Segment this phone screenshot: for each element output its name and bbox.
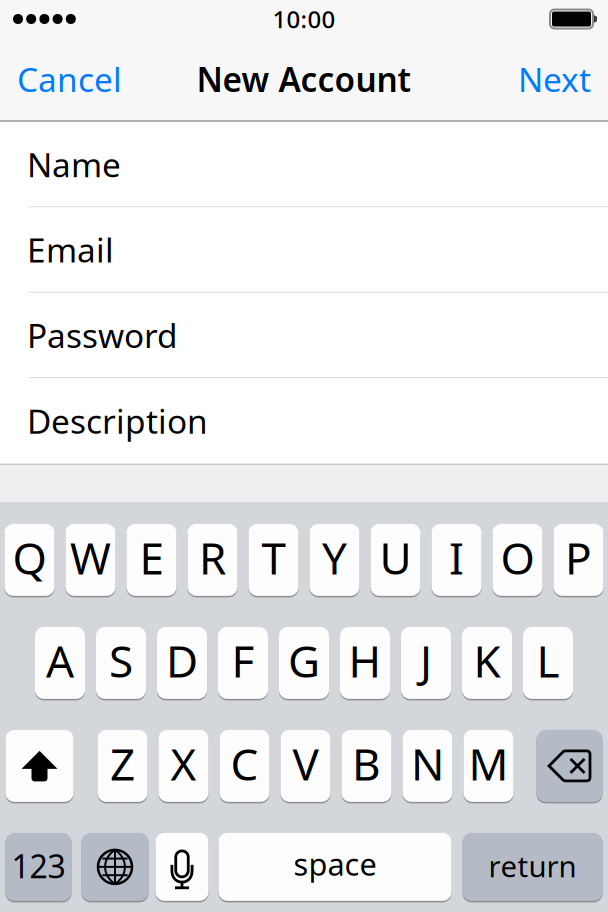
staticText: B (352, 734, 381, 793)
button[interactable]: Z (97, 730, 147, 802)
staticText: A (46, 631, 74, 690)
staticText: Z (110, 734, 135, 793)
staticText: O (500, 528, 534, 587)
staticText: D (166, 631, 198, 690)
staticText: Q (12, 528, 46, 587)
staticText: New Account (196, 57, 411, 101)
button[interactable]: N (402, 730, 452, 802)
staticText: C (230, 734, 258, 793)
staticText: Email (27, 227, 114, 272)
staticText: V (292, 734, 318, 793)
staticText: G (288, 631, 320, 690)
staticText: X (170, 734, 196, 793)
staticText: T (261, 528, 285, 587)
staticText: Name (27, 142, 121, 186)
button[interactable]: E (126, 524, 176, 596)
button[interactable]: Q (4, 524, 54, 596)
button[interactable]: O (492, 524, 542, 596)
staticText: 10:00 (272, 3, 335, 35)
staticText: Description (27, 399, 208, 443)
button[interactable]: P (553, 524, 603, 596)
staticText: P (565, 528, 592, 587)
staticText: return (488, 846, 576, 885)
staticText: space (293, 843, 376, 884)
staticText: S (109, 631, 133, 690)
button[interactable]: M (463, 730, 513, 802)
button[interactable]: Email (0, 207, 608, 292)
button[interactable]: K (462, 627, 512, 699)
staticText: Cancel (17, 57, 122, 101)
button[interactable]: J (401, 627, 451, 699)
button[interactable]: T (248, 524, 298, 596)
staticText: M (468, 734, 508, 793)
staticText: N (411, 734, 444, 793)
button[interactable]: Dictation (155, 833, 208, 901)
button[interactable]: Description (0, 378, 608, 464)
staticText: I (449, 528, 464, 587)
staticText: K (473, 631, 500, 690)
button[interactable]: L (523, 627, 573, 699)
staticText: F (231, 631, 254, 690)
button[interactable]: U (370, 524, 420, 596)
staticText: U (379, 528, 411, 587)
button[interactable]: Shift (5, 730, 73, 802)
staticText: E (139, 528, 163, 587)
staticText: Next (518, 57, 591, 101)
staticText: J (420, 631, 432, 690)
button[interactable]: I (431, 524, 481, 596)
staticText: H (348, 631, 381, 690)
button[interactable]: Delete (536, 730, 602, 802)
staticText: 123 (11, 845, 65, 887)
button[interactable]: X (158, 730, 208, 802)
button[interactable]: Name (0, 122, 608, 206)
button[interactable]: G (279, 627, 329, 699)
button[interactable]: Cancel (0, 46, 136, 112)
button[interactable]: B (341, 730, 391, 802)
button[interactable]: W (65, 524, 115, 596)
staticText: R (199, 528, 226, 587)
staticText: L (536, 631, 559, 690)
button[interactable]: D (157, 627, 207, 699)
button[interactable]: Next (504, 46, 608, 112)
button[interactable]: Password (0, 293, 608, 377)
button[interactable]: S (96, 627, 146, 699)
button[interactable]: space (218, 833, 451, 901)
button[interactable]: C (219, 730, 269, 802)
staticText: Password (27, 313, 178, 357)
button[interactable]: Next keyboard (81, 833, 148, 901)
staticText: Y (322, 528, 347, 587)
button[interactable]: F (218, 627, 268, 699)
button[interactable]: 123 (5, 833, 71, 901)
button[interactable]: R (187, 524, 237, 596)
button[interactable]: return (462, 833, 602, 901)
button[interactable]: H (340, 627, 390, 699)
staticText: W (70, 528, 111, 587)
button[interactable]: V (280, 730, 330, 802)
button[interactable]: A (35, 627, 85, 699)
button[interactable]: Y (309, 524, 359, 596)
